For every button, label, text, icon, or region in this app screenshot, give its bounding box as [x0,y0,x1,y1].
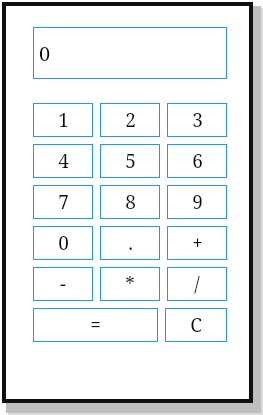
button[interactable]: 6 [167,144,227,178]
staticText: * [125,271,135,297]
staticText: 0 [58,230,69,256]
staticText: 0 [39,40,51,67]
staticText: 4 [58,148,69,174]
button[interactable]: 5 [100,144,160,178]
staticText: 6 [192,148,203,174]
button[interactable]: = [33,308,158,342]
button[interactable]: 8 [100,185,160,219]
button[interactable]: 0 [33,27,227,79]
staticText: / [194,271,200,297]
button[interactable]: C [165,308,227,342]
staticText: 8 [125,189,136,215]
button[interactable]: 7 [33,185,93,219]
staticText: 5 [125,148,136,174]
staticText: 9 [192,189,203,215]
button[interactable]: + [167,226,227,260]
button[interactable]: 2 [100,103,160,137]
button[interactable]: 4 [33,144,93,178]
staticText: 7 [58,189,69,215]
staticText: = [90,312,101,338]
button[interactable]: 3 [167,103,227,137]
staticText: 1 [58,107,69,133]
button[interactable]: 9 [167,185,227,219]
staticText: 3 [192,107,203,133]
staticText: 2 [125,107,136,133]
button[interactable]: / [167,267,227,301]
staticText: . [128,230,133,256]
button[interactable]: 1 [33,103,93,137]
staticText: C [190,312,202,338]
staticText: - [60,271,66,297]
button[interactable]: - [33,267,93,301]
button[interactable]: 0 [33,226,93,260]
button[interactable]: * [100,267,160,301]
button[interactable]: . [100,226,160,260]
staticText: + [192,230,203,256]
